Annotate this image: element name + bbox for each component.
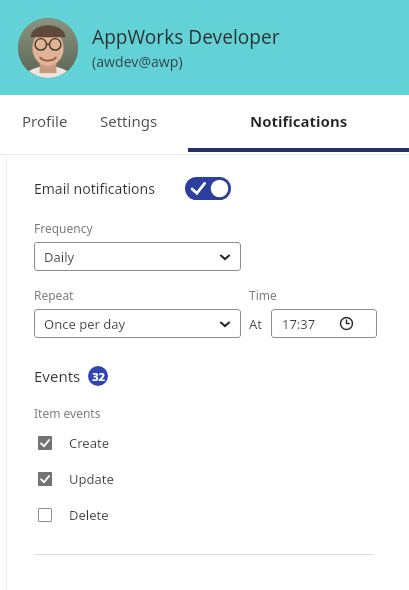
button[interactable]: Daily [34,242,241,271]
button[interactable]: 17:37 [271,309,377,338]
staticText: AppWorks Developer [92,24,280,50]
staticText: Repeat [34,287,74,303]
button[interactable]: Delete [34,506,214,524]
staticText: At [249,315,263,333]
staticText: Once per day [44,315,126,333]
other: Profile picture [18,18,78,78]
button[interactable]: Settings [100,95,158,131]
button[interactable]: Notifications [188,95,409,152]
staticText: Time [249,287,277,303]
staticText: Delete [69,506,109,524]
staticText: Events [34,366,81,386]
staticText: 17:37 [282,315,316,333]
staticText: Notifications [250,111,348,131]
button[interactable]: Once per day [34,309,241,338]
staticText: Daily [44,248,75,266]
staticText: Settings [100,111,158,131]
staticText: Item events [34,405,101,421]
staticText: Profile [22,111,68,131]
staticText: Update [69,470,114,488]
staticText: 32 [92,369,105,384]
staticText: Email notifications [34,179,155,198]
button[interactable]: Email notifications toggle, on [185,177,231,200]
button[interactable]: Profile [22,95,68,131]
button[interactable]: Update [34,470,214,488]
staticText: Create [69,434,109,452]
button[interactable]: Create [34,434,214,452]
staticText: Frequency [34,220,93,236]
staticText: (awdev@awp) [92,52,183,71]
